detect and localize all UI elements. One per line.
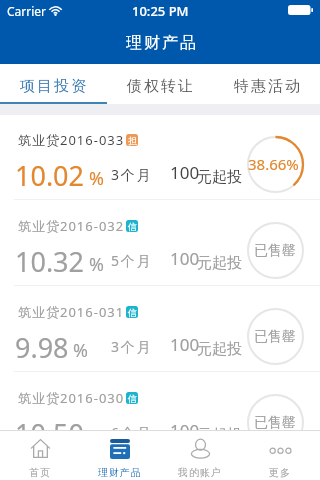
button[interactable]: 债权转让 [106,64,213,104]
staticText: 38.66% [248,154,299,174]
staticText: 筑业贷2016-033 [18,131,125,149]
staticText: 元起投 [197,426,242,445]
staticText: 已售罄 [254,414,296,432]
staticText: 10.02 [15,157,85,194]
staticText: Carrier [7,3,47,19]
other: More [270,439,291,458]
staticText: % [89,166,104,191]
staticText: % [89,424,104,449]
staticText: 元起投 [197,168,242,187]
staticText: 信 [128,221,137,232]
button[interactable]: 筑业贷2016-031 [0,286,320,372]
staticText: 理财产品 [125,33,197,53]
button[interactable]: My account [160,431,240,480]
staticText: 10:25 PM [132,2,189,20]
staticText: 更多 [269,466,291,479]
other: Home [31,439,50,458]
staticText: 信 [128,307,137,318]
staticText: 元起投 [197,340,242,359]
staticText: 首页 [29,466,51,479]
staticText: 项目投资 [19,77,87,96]
staticText: 9.98 [15,329,69,366]
staticText: 100 [170,419,200,442]
staticText: 3个月 [111,165,153,184]
staticText: 元起投 [197,254,242,273]
button[interactable]: 筑业贷2016-032 [0,200,320,286]
staticText: 已售罄 [254,328,296,346]
staticText: 特惠活动 [233,77,301,96]
staticText: 6个月 [111,423,153,442]
staticText: 债权转让 [126,77,194,96]
button[interactable]: Products [80,431,160,480]
staticText: 100 [170,247,200,270]
staticText: 信 [128,393,137,404]
staticText: 100 [170,161,200,184]
other: My account [191,439,210,458]
staticText: 3个月 [111,337,153,356]
staticText: % [89,252,104,277]
button[interactable]: Home [0,431,80,480]
staticText: 我的账户 [178,466,222,479]
button[interactable]: More [240,431,320,480]
staticText: 筑业贷2016-030 [18,389,125,407]
staticText: 担 [128,135,137,146]
other: Products [110,439,130,459]
staticText: 理财产品 [98,466,142,479]
button[interactable]: 筑业贷2016-030 [0,372,320,458]
button[interactable]: 筑业贷2016-033 [0,114,320,200]
staticText: % [73,338,88,363]
staticText: 10.50 [15,415,85,452]
button[interactable]: 特惠活动 [213,64,320,104]
staticText: 筑业贷2016-032 [18,217,125,235]
staticText: 筑业贷2016-031 [18,303,125,321]
button[interactable]: 项目投资 [0,64,106,104]
staticText: 100 [170,333,200,356]
staticText: 5个月 [111,251,153,270]
staticText: 10.32 [15,243,85,280]
staticText: 已售罄 [254,242,296,260]
